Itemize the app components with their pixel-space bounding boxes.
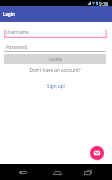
button[interactable]: Home (47, 165, 67, 180)
staticText: Password (6, 44, 28, 50)
button[interactable]: Recent apps (78, 165, 98, 180)
button[interactable]: Compose email (90, 146, 104, 160)
button[interactable]: Sign up! (0, 83, 112, 89)
button[interactable]: Back (13, 165, 33, 180)
staticText: LOGIN (49, 57, 62, 62)
staticText: Username (6, 29, 29, 35)
staticText: 9:36 (99, 1, 109, 7)
button[interactable]: LOGIN (4, 54, 106, 64)
staticText: Don't have an account? (0, 67, 111, 73)
staticText: Login (3, 11, 15, 17)
